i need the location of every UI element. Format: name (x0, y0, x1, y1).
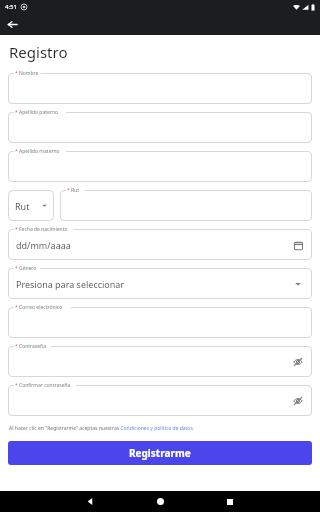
staticText: Registro (9, 42, 68, 62)
staticText: Rut (71, 187, 80, 194)
staticText: * (15, 70, 18, 77)
staticText: * (67, 187, 70, 194)
staticText: Presiona para seleccionar (16, 278, 125, 290)
staticText: * (15, 226, 18, 233)
staticText: Contraseña (19, 343, 46, 350)
staticText: * (15, 343, 18, 350)
staticText: 4:51 (5, 3, 17, 11)
staticText: Género (19, 265, 37, 272)
staticText: Apellido paterno (19, 109, 59, 116)
button[interactable]: * (8, 151, 312, 182)
button[interactable]: Home (125, 491, 195, 512)
staticText: Confirmar contraseña (19, 382, 71, 389)
button[interactable]: Toggle confirm password visibility (290, 393, 306, 409)
staticText: Fecha de nacimiento (19, 226, 68, 233)
staticText: * (15, 382, 18, 389)
staticText: * (15, 265, 18, 272)
button[interactable]: * (8, 346, 312, 377)
staticText: Correo electrónico (19, 304, 63, 311)
staticText: Apellido materno (19, 148, 60, 155)
staticText: * (15, 148, 18, 155)
button[interactable]: Select date (290, 237, 306, 253)
staticText: Rut (15, 200, 30, 212)
button[interactable]: Recent apps (195, 491, 265, 512)
button[interactable]: Select gender (290, 276, 306, 292)
button[interactable]: Rut (8, 190, 54, 221)
staticText: Al hacer clic en "Registrarme" aceptas n… (9, 425, 195, 432)
button[interactable]: * (8, 112, 312, 143)
staticText: * (15, 304, 18, 311)
button[interactable]: * (8, 385, 312, 416)
button[interactable]: * (8, 307, 312, 338)
staticText: dd/mm/aaaa (16, 239, 71, 251)
button[interactable]: * (60, 190, 312, 221)
button[interactable]: Back (4, 16, 21, 33)
button[interactable]: * (8, 268, 312, 299)
staticText: * (15, 109, 18, 116)
button[interactable]: Toggle password visibility (290, 354, 306, 370)
button[interactable]: Registrarme (8, 441, 312, 465)
button[interactable]: * (8, 73, 312, 104)
staticText: Registrarme (129, 446, 191, 460)
button[interactable]: * (8, 229, 312, 260)
button[interactable]: Back (55, 491, 125, 512)
staticText: Nombre (19, 70, 39, 77)
